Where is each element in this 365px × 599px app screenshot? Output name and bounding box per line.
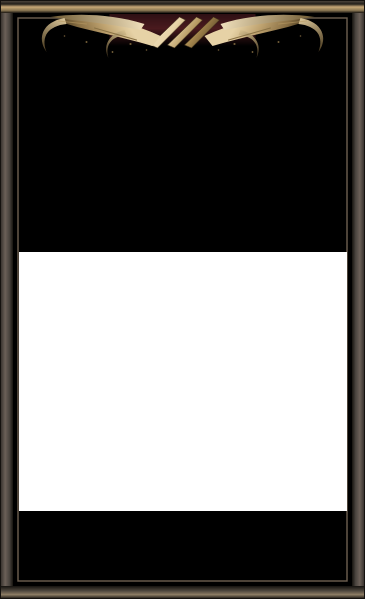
button[interactable]: Ornate framed panel [0,0,365,599]
